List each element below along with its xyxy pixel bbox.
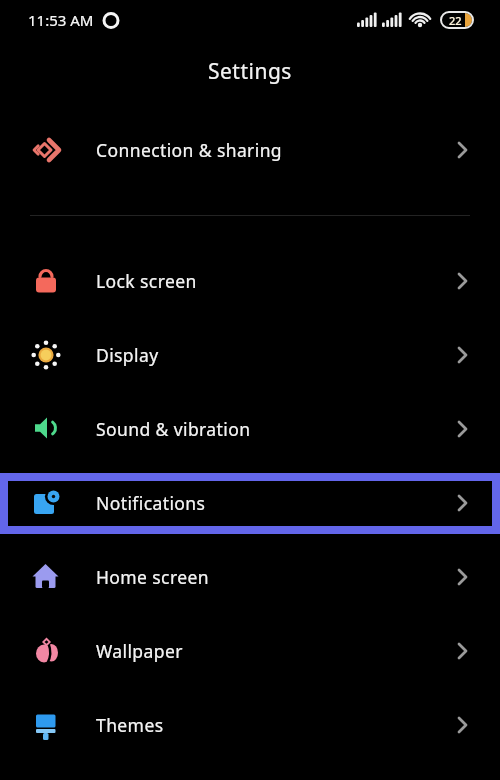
staticText: Connection & sharing [96,138,283,162]
staticText: Sound & vibration [96,417,251,441]
staticText: Notifications [96,491,206,515]
button[interactable]: Wallpaper [0,614,500,688]
staticText: Display [96,343,159,367]
button[interactable]: Lock screen [0,244,500,318]
staticText: 22 [449,13,462,28]
button[interactable]: Sound & vibration [0,392,500,466]
staticText: Settings [208,57,292,86]
staticText: 11:53 AM [28,10,94,30]
button[interactable]: Themes [0,688,500,762]
button[interactable]: Home screen [0,540,500,614]
button[interactable]: Connection & sharing [0,113,500,187]
button[interactable]: Notifications [0,466,500,540]
staticText: Lock screen [96,269,197,293]
staticText: Wallpaper [96,639,183,663]
staticText: Home screen [96,565,209,589]
button[interactable]: Display [0,318,500,392]
staticText: Themes [96,713,164,737]
